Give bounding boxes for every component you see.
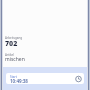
- staticText: Artikel: [5, 53, 15, 57]
- staticText: Start: [10, 75, 17, 79]
- staticText: mischen: [5, 56, 25, 63]
- button[interactable]: Start: [6, 73, 84, 84]
- staticText: 702: [5, 39, 18, 49]
- staticText: Arbeitsgang: [5, 36, 23, 40]
- staticText: 10:49:38: [10, 78, 28, 84]
- button[interactable]: Timer: [74, 74, 83, 83]
